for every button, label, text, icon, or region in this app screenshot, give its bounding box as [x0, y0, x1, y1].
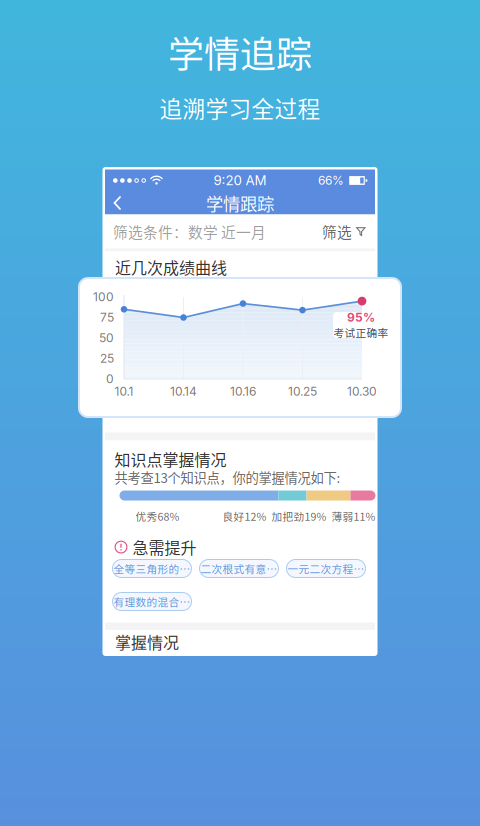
staticText: 学情跟踪 — [206, 190, 274, 216]
staticText: 全等三角形的… — [113, 561, 190, 576]
staticText: 95% — [347, 310, 375, 324]
staticText: 近几次成绩曲线 — [115, 255, 227, 279]
button[interactable]: 全等三角形的… — [112, 559, 191, 577]
staticText: 10.16 — [230, 384, 256, 398]
staticText: 75 — [100, 310, 114, 325]
staticText: 学情追踪 — [168, 26, 312, 78]
staticText: 共考查13个知识点，你的掌握情况如下: — [114, 467, 340, 487]
staticText: 薄弱11% — [331, 508, 375, 524]
staticText: 良好12% — [222, 508, 266, 524]
staticText: 100 — [93, 290, 114, 304]
staticText: 急需提升 — [132, 535, 196, 559]
staticText: 掌握情况 — [115, 630, 179, 653]
button[interactable]: Back — [105, 191, 137, 214]
staticText: 10.30 — [347, 384, 377, 398]
button[interactable]: 有理数的混合… — [112, 592, 191, 610]
staticText: 追溯学习全过程 — [159, 91, 320, 124]
staticText: 考试正确率 — [333, 324, 388, 340]
button[interactable]: 筛选条件：数学 近一月 — [105, 214, 375, 248]
button[interactable]: 二次根式有意… — [199, 559, 278, 577]
staticText: 50 — [99, 331, 114, 345]
staticText: 10.1 — [114, 384, 133, 398]
staticText: 10.25 — [288, 384, 317, 398]
staticText: 筛选条件：数学 近一月 — [113, 221, 266, 242]
staticText: 9:20 AM — [213, 172, 266, 188]
button[interactable]: 一元二次方程… — [286, 559, 365, 577]
staticText: 筛选 — [322, 221, 352, 242]
staticText: 加把劲19% — [271, 508, 326, 524]
staticText: 0 — [106, 372, 114, 386]
staticText: 66% — [318, 173, 344, 188]
staticText: 知识点掌握情况 — [114, 447, 226, 471]
staticText: 优秀68% — [135, 508, 179, 524]
staticText: 一元二次方程… — [287, 561, 364, 576]
staticText: 二次根式有意… — [200, 561, 277, 576]
staticText: 25 — [100, 351, 114, 366]
staticText: 有理数的混合… — [113, 594, 190, 609]
staticText: 10.14 — [170, 384, 197, 398]
